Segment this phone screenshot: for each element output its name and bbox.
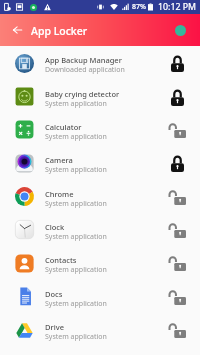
button[interactable]: Unlocked <box>167 187 187 207</box>
button[interactable]: Camera <box>0 146 200 180</box>
staticText: System application <box>45 99 107 109</box>
button[interactable]: Calculator <box>0 113 200 146</box>
button[interactable]: Unlocked <box>167 320 187 340</box>
button[interactable]: Contacts <box>0 246 200 280</box>
button[interactable]: Docs <box>0 280 200 313</box>
button[interactable]: Unlocked <box>167 253 187 273</box>
button[interactable]: Locked <box>167 87 187 107</box>
button[interactable]: Clock <box>0 213 200 246</box>
staticText: Clock <box>45 222 65 232</box>
staticText: App Locker <box>31 24 88 38</box>
staticText: Calculator <box>45 122 82 132</box>
staticText: System application <box>45 199 107 209</box>
staticText: System application <box>45 232 107 242</box>
staticText: 10:12 PM <box>158 1 197 13</box>
button[interactable]: Baby crying detector <box>0 80 200 113</box>
button[interactable]: Account <box>175 25 186 36</box>
button[interactable]: Drive <box>0 313 200 347</box>
staticText: Camera <box>45 155 73 165</box>
staticText: 87% <box>132 2 146 12</box>
staticText: Chrome <box>45 189 74 199</box>
button[interactable]: App Backup Manager <box>0 46 200 80</box>
staticText: App Backup Manager <box>45 55 122 65</box>
button[interactable]: Locked <box>167 53 187 73</box>
staticText: Contacts <box>45 255 77 265</box>
staticText: System application <box>45 132 107 142</box>
staticText: Downloaded application <box>45 65 125 75</box>
staticText: System application <box>45 165 107 175</box>
staticText: Drive <box>45 322 64 332</box>
staticText: System application <box>45 299 107 309</box>
button[interactable]: Unlocked <box>167 120 187 140</box>
staticText: Docs <box>45 289 63 299</box>
button[interactable]: Unlocked <box>167 287 187 307</box>
button[interactable]: Chrome <box>0 180 200 213</box>
staticText: System application <box>45 332 107 342</box>
button[interactable]: Unlocked <box>167 220 187 240</box>
button[interactable]: Locked <box>167 153 187 173</box>
button[interactable]: Back <box>9 22 25 38</box>
staticText: System application <box>45 265 107 275</box>
staticText: Baby crying detector <box>45 89 120 99</box>
